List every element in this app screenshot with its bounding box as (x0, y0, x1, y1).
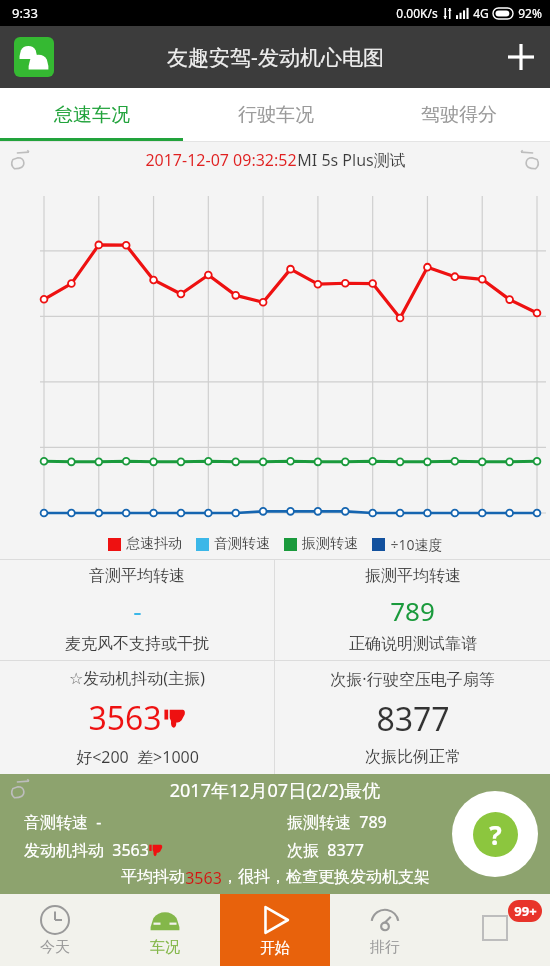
staticText: 好<200 差>1000 (76, 746, 199, 768)
button[interactable]: 开始 (220, 894, 330, 966)
button[interactable]: 次振·行驶空压电子扇等 (275, 661, 550, 774)
button[interactable]: 怠速车况 (0, 88, 184, 142)
button[interactable]: 驾驶得分 (367, 88, 550, 142)
staticText: 9:33 (12, 4, 38, 22)
button[interactable]: 音测平均转速 (0, 560, 274, 660)
staticText: 发动机抖动 3563 (24, 839, 149, 861)
staticText: 今天 (40, 938, 70, 957)
staticText: 次振·行驶空压电子扇等 (330, 668, 495, 690)
staticText: 怠速车况 (54, 103, 130, 127)
button[interactable]: 行驶车况 (184, 88, 367, 142)
staticText: 音测转速 - (24, 811, 102, 833)
staticText: ，很抖，检查更换发动机支架 (222, 867, 430, 887)
other: Swipe left (8, 149, 30, 171)
button[interactable]: Add (492, 28, 550, 86)
staticText: 行驶车况 (238, 103, 314, 127)
staticText: 2017-12-07 09:32:52 (145, 149, 297, 171)
staticText: 音测转速 (214, 535, 270, 553)
staticText: 789 (390, 593, 435, 628)
staticText: 92% (518, 5, 542, 21)
staticText: 振测转速 (302, 535, 358, 553)
button[interactable]: 振测平均转速 (275, 560, 550, 660)
staticText: - (133, 593, 142, 628)
other: Swipe (8, 778, 30, 800)
staticText: 车况 (150, 938, 180, 957)
staticText: 平均抖动 (121, 867, 185, 887)
staticText: 友趣安驾-发动机心电图 (167, 43, 384, 72)
staticText: 正确说明测试靠谱 (349, 634, 477, 654)
staticText: 0.00K/s (396, 5, 438, 21)
button[interactable]: 排行 (330, 894, 440, 966)
staticText: 麦克风不支持或干扰 (65, 634, 209, 654)
staticText: 99+ (514, 902, 537, 920)
staticText: 驾驶得分 (421, 103, 497, 127)
staticText: ? (489, 817, 502, 852)
button[interactable]: 今天 (0, 894, 110, 966)
staticText: 3563 (185, 867, 222, 889)
staticText: 排行 (370, 938, 400, 957)
staticText: ☆发动机抖动(主振) (69, 667, 205, 689)
staticText: 4G (473, 5, 489, 21)
staticText: MI 5s Plus测试 (297, 149, 406, 171)
staticText: 开始 (260, 939, 290, 958)
staticText: 怠速抖动 (126, 535, 182, 553)
staticText: 振测平均转速 (365, 566, 461, 586)
button[interactable]: Messages (440, 894, 550, 966)
button[interactable]: ☆发动机抖动(主振) (0, 661, 274, 774)
staticText: 2017年12月07日(2/2)最优 (0, 778, 550, 803)
staticText: 次振 8377 (287, 839, 364, 861)
staticText: 次振比例正常 (365, 747, 461, 767)
staticText: 振测转速 789 (287, 811, 387, 833)
staticText: 3563 (88, 696, 162, 740)
button[interactable]: 车况 (110, 894, 220, 966)
button[interactable]: App icon (14, 37, 54, 77)
staticText: ÷10速度 (390, 535, 443, 554)
staticText: 8377 (376, 697, 450, 741)
staticText: 音测平均转速 (89, 566, 185, 586)
other: Swipe right (520, 149, 542, 171)
button[interactable]: Help (452, 791, 538, 877)
